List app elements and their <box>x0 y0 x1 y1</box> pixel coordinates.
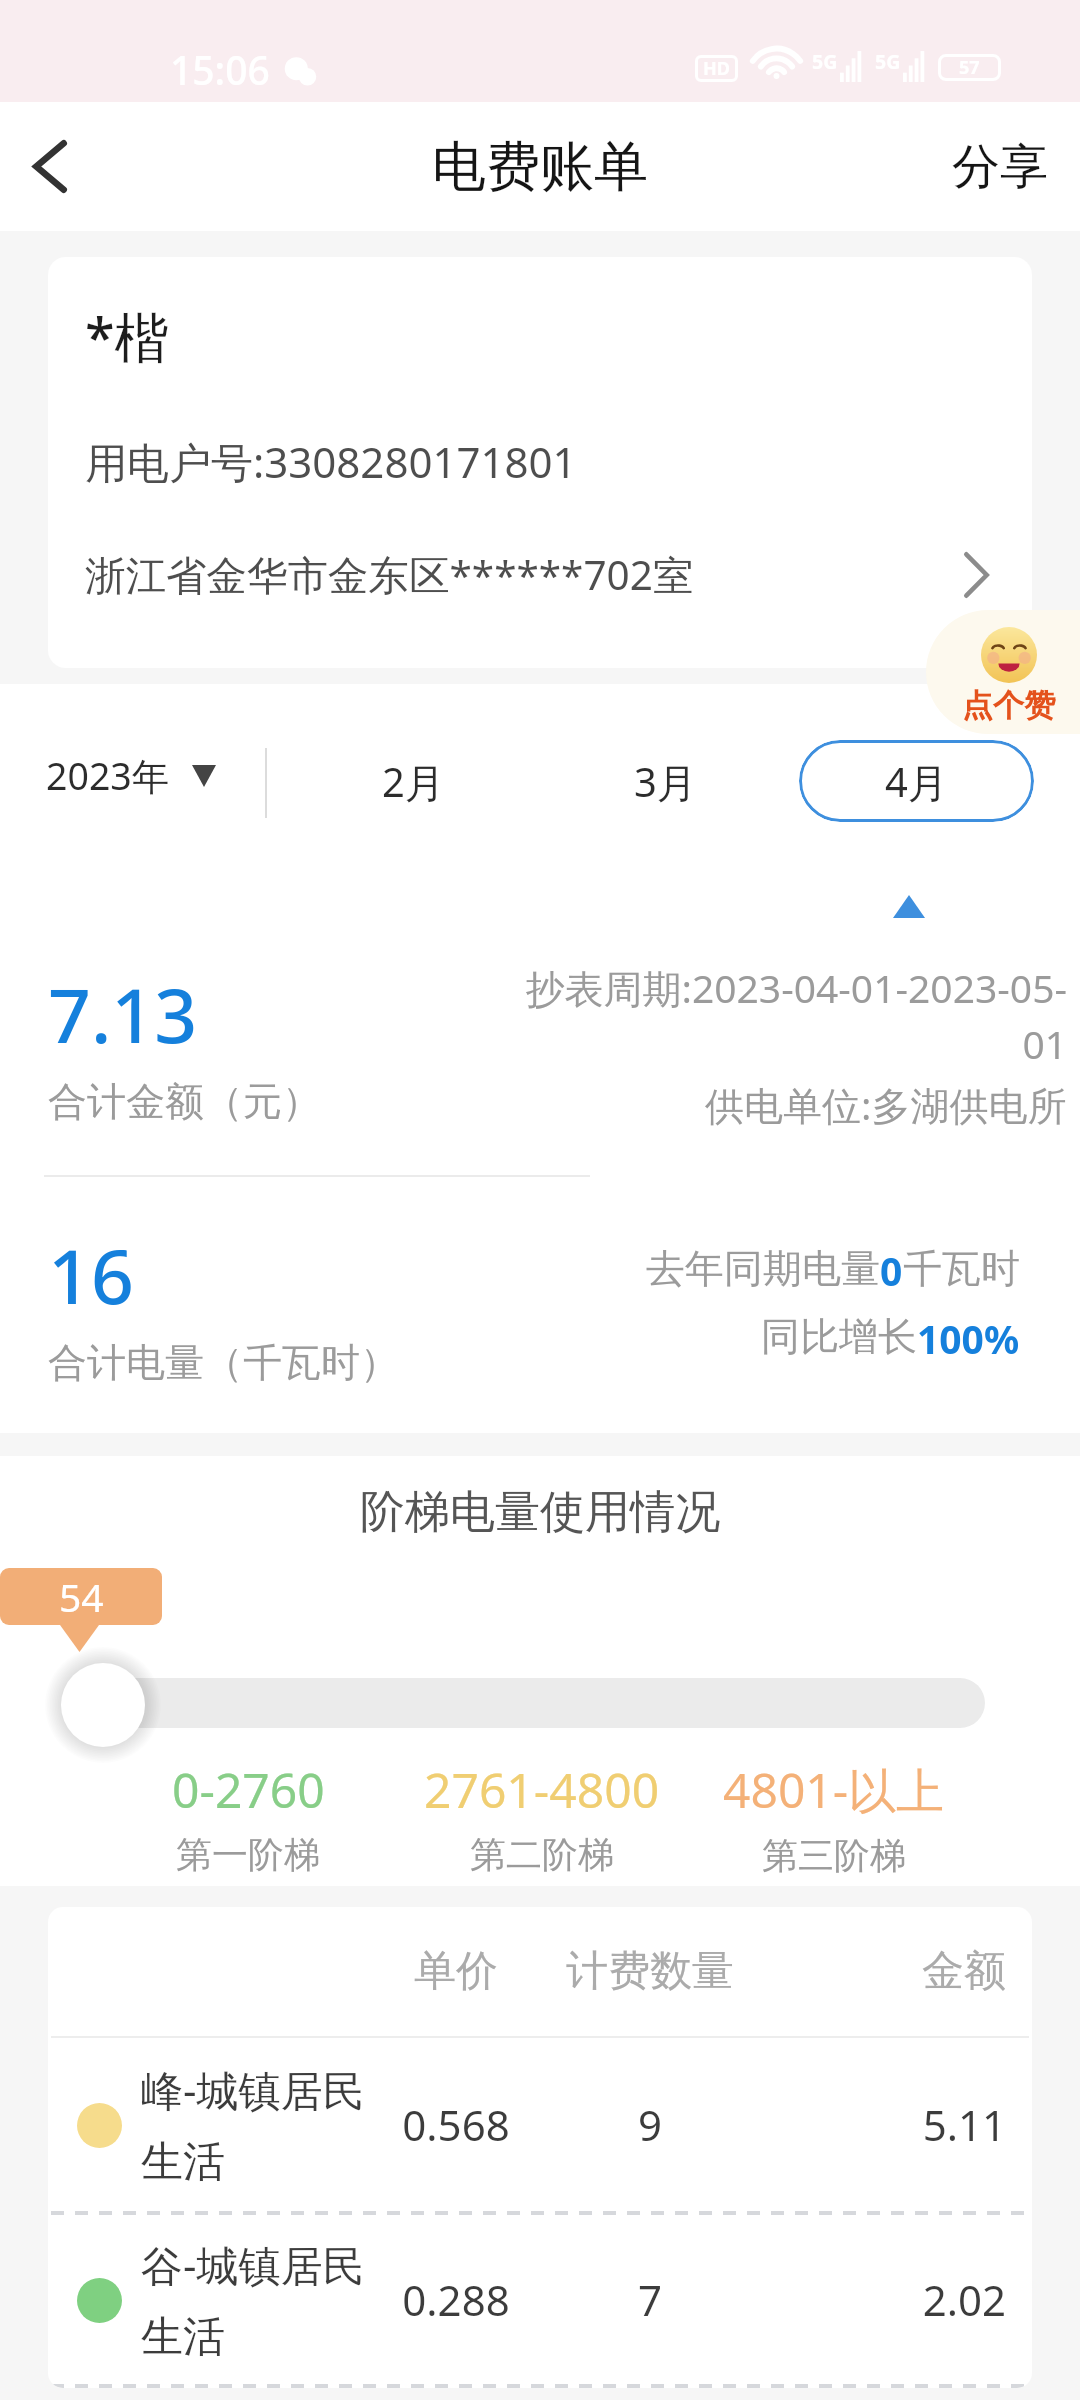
staticText: 9 <box>536 2096 764 2153</box>
button[interactable]: *楷 <box>48 257 1032 668</box>
button[interactable]: 2月 <box>296 740 531 822</box>
staticText: 2.02 <box>764 2271 1006 2328</box>
staticText: 计费数量 <box>536 1945 764 1998</box>
staticText: 100% <box>917 1312 1020 1365</box>
staticText: 第二阶梯 <box>470 1832 614 1877</box>
staticText: 16 <box>48 1224 134 1326</box>
staticText: 单价 <box>376 1945 536 1998</box>
staticText: 4月 <box>885 754 948 808</box>
staticText: 0.568 <box>376 2096 536 2153</box>
staticText: 合计金额（元） <box>48 1077 321 1126</box>
staticText: 5.11 <box>764 2096 1006 2153</box>
staticText: 合计电量（千瓦时） <box>48 1338 399 1387</box>
staticText: 3月 <box>634 754 697 808</box>
staticText: 阶梯电量使用情况 <box>360 1484 720 1541</box>
staticText: 用电户号:3308280171801 <box>85 433 577 490</box>
staticText: 5G <box>812 48 838 75</box>
staticText: 4801-以上 <box>723 1757 945 1823</box>
staticText: 点个赞 <box>962 686 1055 725</box>
button[interactable]: 3月 <box>548 740 783 822</box>
staticText: 千瓦时 <box>903 1244 1020 1293</box>
staticText: 15:06 <box>170 43 270 96</box>
staticText: 峰-城镇居民 <box>141 2061 365 2118</box>
staticText: 01 <box>1022 1017 1067 1070</box>
staticText: 去年同期电量 <box>646 1244 880 1293</box>
button[interactable]: Back <box>0 102 100 231</box>
staticText: 57 <box>959 55 980 80</box>
staticText: 2761-4800 <box>424 1757 660 1822</box>
staticText: 0 <box>880 1244 903 1297</box>
staticText: 供电单位:多湖供电所 <box>705 1078 1067 1131</box>
staticText: 谷-城镇居民 <box>141 2236 365 2293</box>
staticText: 生活 <box>141 2311 225 2364</box>
staticText: 7 <box>536 2271 764 2328</box>
staticText: 7.13 <box>48 963 198 1065</box>
button[interactable]: 4月 <box>799 740 1034 822</box>
staticText: 5G <box>875 48 901 75</box>
staticText: 第一阶梯 <box>176 1832 320 1877</box>
staticText: *楷 <box>85 299 169 373</box>
staticText: 2月 <box>382 754 445 808</box>
staticText: 2023年 <box>46 750 170 801</box>
staticText: 0.288 <box>376 2271 536 2328</box>
staticText: 电费账单 <box>432 133 648 201</box>
staticText: 浙江省金华市金东区******702室 <box>85 547 964 602</box>
staticText: HD <box>703 56 730 81</box>
staticText: 54 <box>59 1570 104 1623</box>
button[interactable]: 2023年 <box>0 738 240 813</box>
staticText: 第三阶梯 <box>762 1833 906 1878</box>
staticText: 金额 <box>764 1945 1006 1998</box>
staticText: 0-2760 <box>172 1757 325 1822</box>
staticText: 分享 <box>952 137 1048 197</box>
button[interactable]: 点个赞 <box>926 610 1080 734</box>
button[interactable]: 分享 <box>910 102 1080 231</box>
staticText: 同比增长 <box>761 1312 917 1361</box>
staticText: 抄表周期:2023-04-01-2023-05- <box>525 961 1067 1014</box>
staticText: 生活 <box>141 2136 225 2189</box>
